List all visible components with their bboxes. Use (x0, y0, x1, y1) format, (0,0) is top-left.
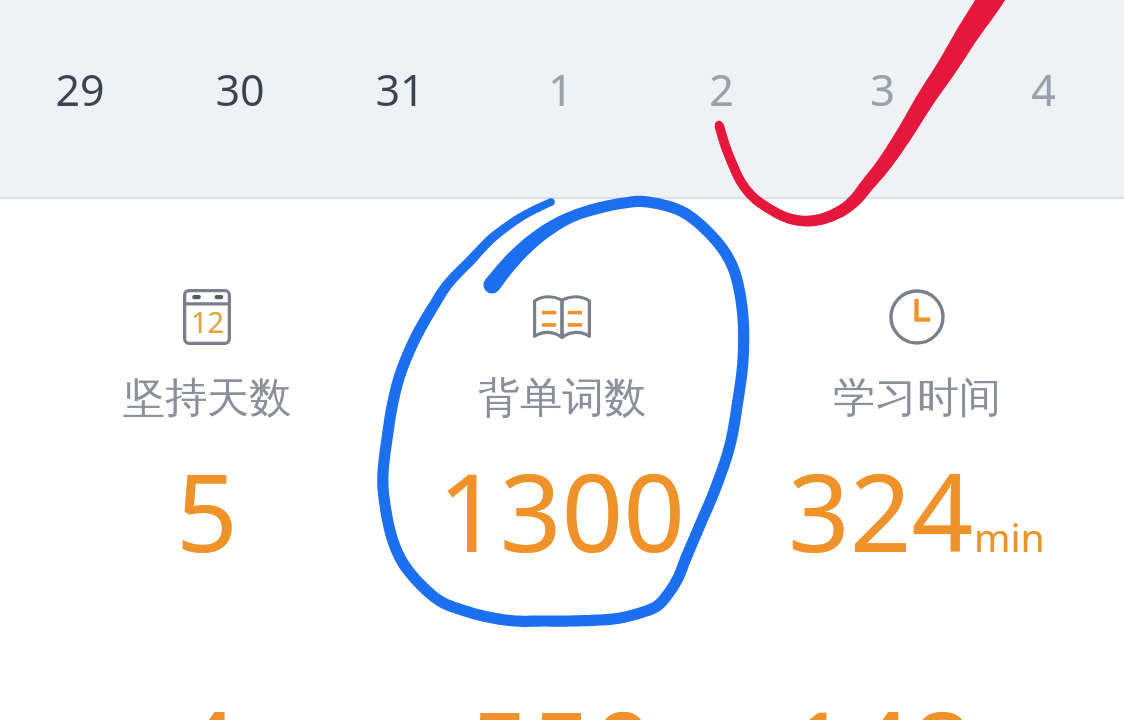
button[interactable]: 29 (0, 60, 160, 122)
button[interactable]: 4 (963, 60, 1124, 122)
staticText: 324 (788, 437, 974, 584)
staticText: 1300 (438, 437, 686, 584)
staticText: 31 (375, 60, 425, 119)
staticText: 4 (176, 675, 238, 720)
staticText: 29 (55, 60, 105, 119)
button[interactable]: Study time (739, 283, 1094, 593)
button[interactable]: Words (384, 283, 739, 593)
staticText: 30 (215, 60, 265, 119)
staticText: 148 (788, 675, 974, 720)
staticText: min (974, 510, 1045, 563)
staticText: 坚持天数 (123, 372, 291, 425)
other: Calendar (183, 289, 231, 345)
other: Study time (889, 289, 945, 345)
button[interactable]: 3 (802, 60, 963, 122)
staticText: 550 (469, 675, 655, 720)
staticText: 2 (709, 60, 734, 119)
other: Words (533, 295, 591, 339)
staticText: 12 (191, 302, 225, 341)
button[interactable]: 2 (641, 60, 802, 122)
staticText: 3 (870, 60, 895, 119)
button[interactable]: 30 (160, 60, 320, 122)
button[interactable]: 1 (480, 60, 641, 122)
staticText: 背单词数 (478, 372, 646, 425)
staticText: 1 (548, 60, 573, 119)
staticText: 5 (176, 437, 238, 584)
button[interactable]: Calendar (30, 283, 384, 593)
button[interactable]: 31 (320, 60, 480, 122)
staticText: 4 (1031, 60, 1056, 119)
staticText: 学习时间 (833, 372, 1001, 425)
